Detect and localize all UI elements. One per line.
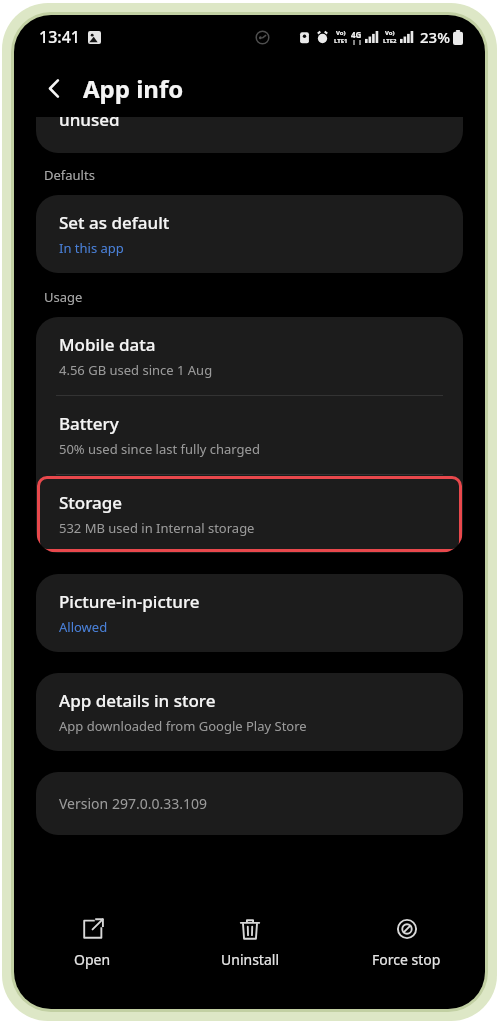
staticText: LTE2	[383, 37, 397, 45]
button[interactable]: Force stop	[328, 903, 485, 983]
button[interactable]: App details in store	[36, 673, 463, 751]
button[interactable]: Set as default	[36, 195, 463, 273]
staticText: Uninstall	[221, 950, 279, 969]
staticText: In this app	[59, 239, 124, 257]
staticText: Allowed	[59, 618, 108, 636]
staticText: Storage	[59, 491, 123, 514]
staticText: Vo)	[385, 29, 395, 37]
staticText: 50% used since last fully charged	[59, 440, 260, 458]
button[interactable]: Battery	[36, 396, 463, 474]
staticText: Mobile data	[59, 333, 156, 356]
button[interactable]: Mobile data	[36, 317, 463, 395]
staticText: Force stop	[372, 950, 441, 969]
staticText: Version 297.0.0.33.109	[59, 794, 207, 813]
staticText: unused	[59, 117, 120, 131]
staticText: 4.56 GB used since 1 Aug	[59, 361, 213, 379]
staticText: 532 MB used in Internal storage	[59, 519, 255, 537]
staticText: App info	[83, 72, 184, 105]
staticText: Vo)	[336, 29, 346, 37]
staticText: 23%	[420, 27, 450, 47]
button[interactable]: unused	[36, 117, 463, 153]
staticText: LTE1	[334, 37, 348, 45]
button[interactable]: Open	[14, 903, 171, 983]
staticText: 4G	[351, 29, 362, 40]
button[interactable]: Version 297.0.0.33.109	[36, 772, 463, 835]
staticText: Picture-in-picture	[59, 590, 200, 613]
staticText: Defaults	[44, 166, 95, 184]
button[interactable]: Picture-in-picture	[36, 574, 463, 652]
staticText: Open	[74, 950, 111, 969]
button[interactable]: Back	[34, 68, 74, 108]
button[interactable]: Storage	[36, 475, 463, 553]
staticText: App details in store	[59, 689, 216, 712]
staticText: Usage	[44, 288, 83, 306]
button[interactable]: Uninstall	[171, 903, 328, 983]
staticText: Set as default	[59, 211, 170, 234]
staticText: Battery	[59, 412, 119, 435]
button[interactable]: Storage	[36, 475, 463, 553]
staticText: 13:41	[39, 26, 80, 48]
staticText: App downloaded from Google Play Store	[59, 717, 307, 735]
